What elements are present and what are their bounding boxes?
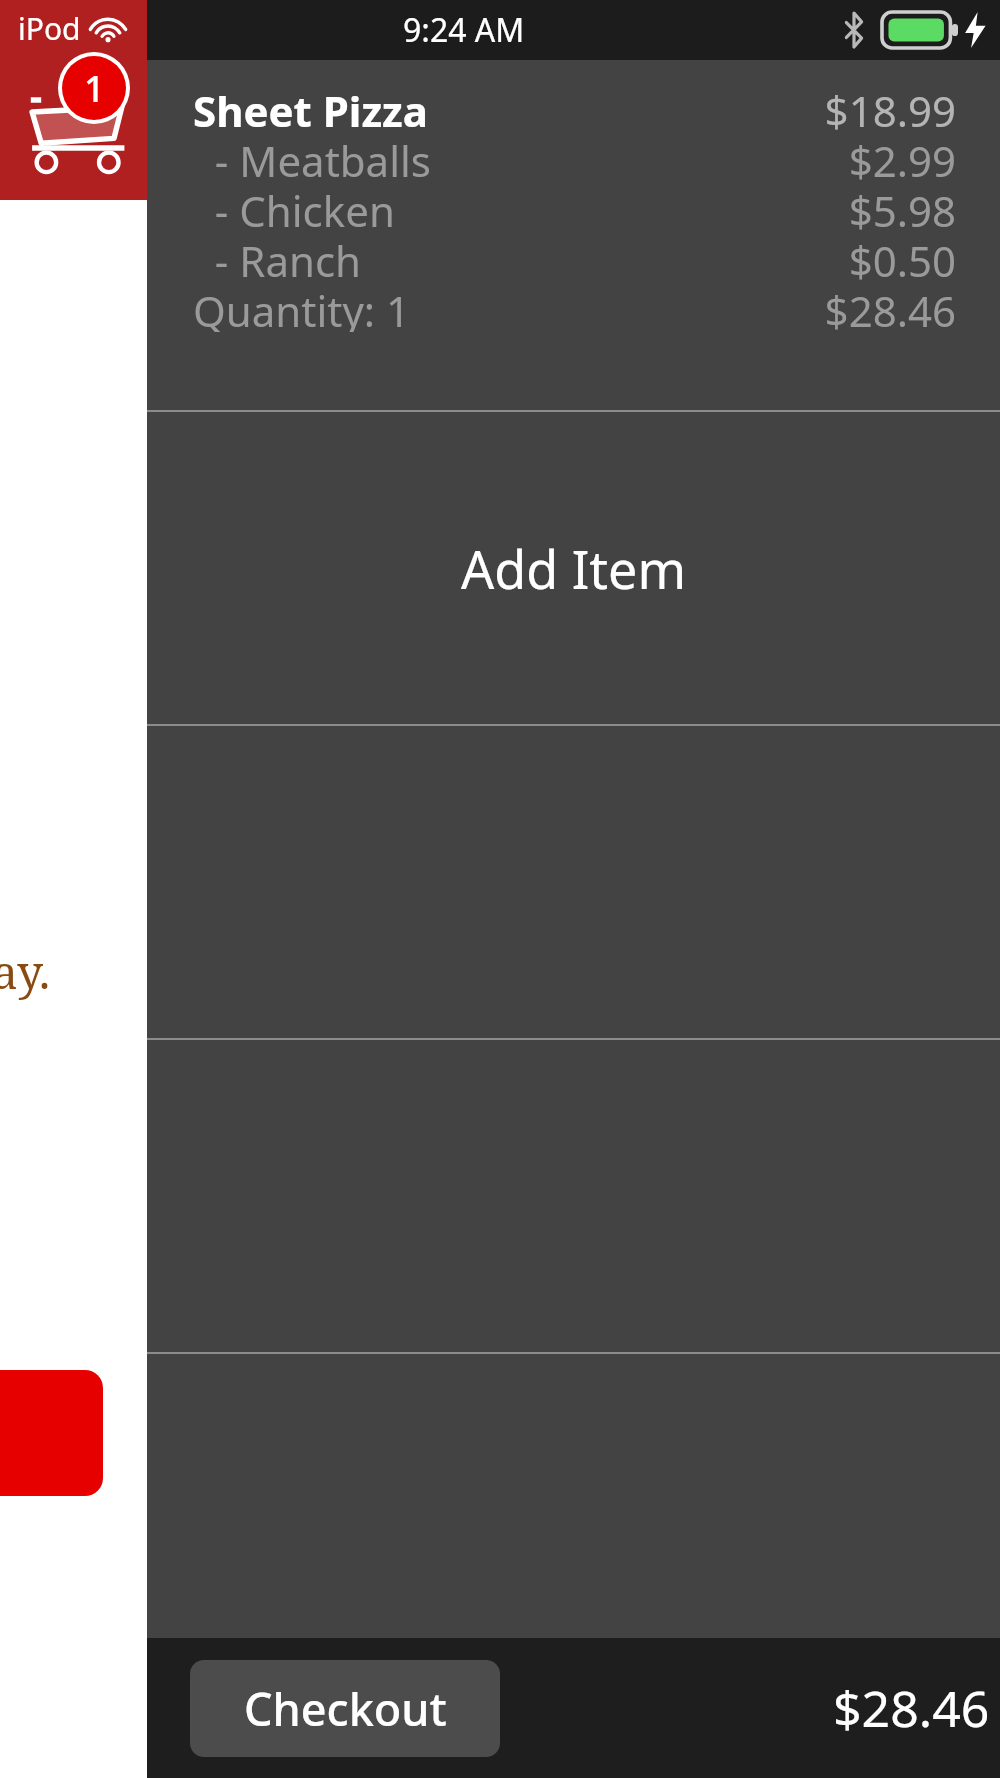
staticText: $28.46 [833,1674,990,1742]
staticText: $28.46 [411,282,956,332]
staticText: 9:24 AM [403,8,525,52]
button[interactable]: Cart [10,52,140,172]
staticText: Sheet Pizza [193,82,428,132]
staticText: 1 [84,64,105,113]
staticText: - Ranch [193,232,362,282]
button[interactable]: Checkout [190,1660,500,1757]
staticText: $0.50 [362,232,956,282]
staticText: $5.98 [395,182,956,232]
staticText: Checkout [244,1678,447,1739]
staticText: ay. [0,940,51,1003]
button[interactable]: Order [0,1370,103,1496]
staticText: Add Item [461,533,687,604]
staticText: - Meatballs [193,132,431,182]
staticText: - Chicken [193,182,395,232]
staticText: $2.99 [431,132,956,182]
staticText: iPod [18,8,81,49]
button[interactable]: Add Item [147,412,1000,724]
staticText: $18.99 [428,82,956,132]
staticText: Quantity: 1 [193,282,411,332]
button[interactable]: Sheet Pizza [147,60,1000,410]
